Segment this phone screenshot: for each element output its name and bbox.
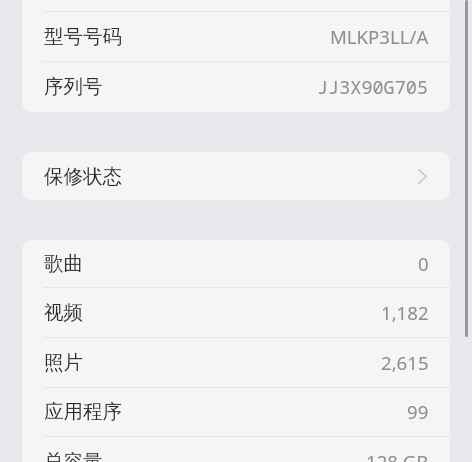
- button[interactable]: 视频: [22, 287, 450, 337]
- button[interactable]: 序列号: [22, 61, 450, 111]
- button[interactable]: 总容量: [22, 436, 450, 462]
- staticText: 歌曲: [44, 251, 83, 276]
- button[interactable]: 型号号码: [22, 11, 450, 61]
- staticText: 0: [418, 251, 429, 276]
- staticText: 2,615: [381, 350, 429, 375]
- button[interactable]: 应用程序: [22, 387, 450, 436]
- staticText: MLKP3LL/A: [330, 24, 429, 49]
- staticText: 1,182: [381, 300, 429, 325]
- button[interactable]: 歌曲: [22, 240, 450, 287]
- other: Open warranty status: [418, 169, 427, 184]
- staticText: 保修状态: [44, 164, 122, 189]
- staticText: 总容量: [44, 449, 103, 462]
- staticText: 序列号: [44, 74, 103, 99]
- button[interactable]: 保修状态: [22, 152, 450, 200]
- staticText: JJ3X90G705: [317, 74, 429, 99]
- staticText: 照片: [44, 350, 83, 375]
- staticText: 应用程序: [44, 399, 122, 424]
- button[interactable]: 照片: [22, 337, 450, 387]
- staticText: 视频: [44, 300, 83, 325]
- staticText: 型号号码: [44, 24, 122, 49]
- staticText: 128 GB: [366, 449, 429, 462]
- staticText: 99: [407, 399, 429, 424]
